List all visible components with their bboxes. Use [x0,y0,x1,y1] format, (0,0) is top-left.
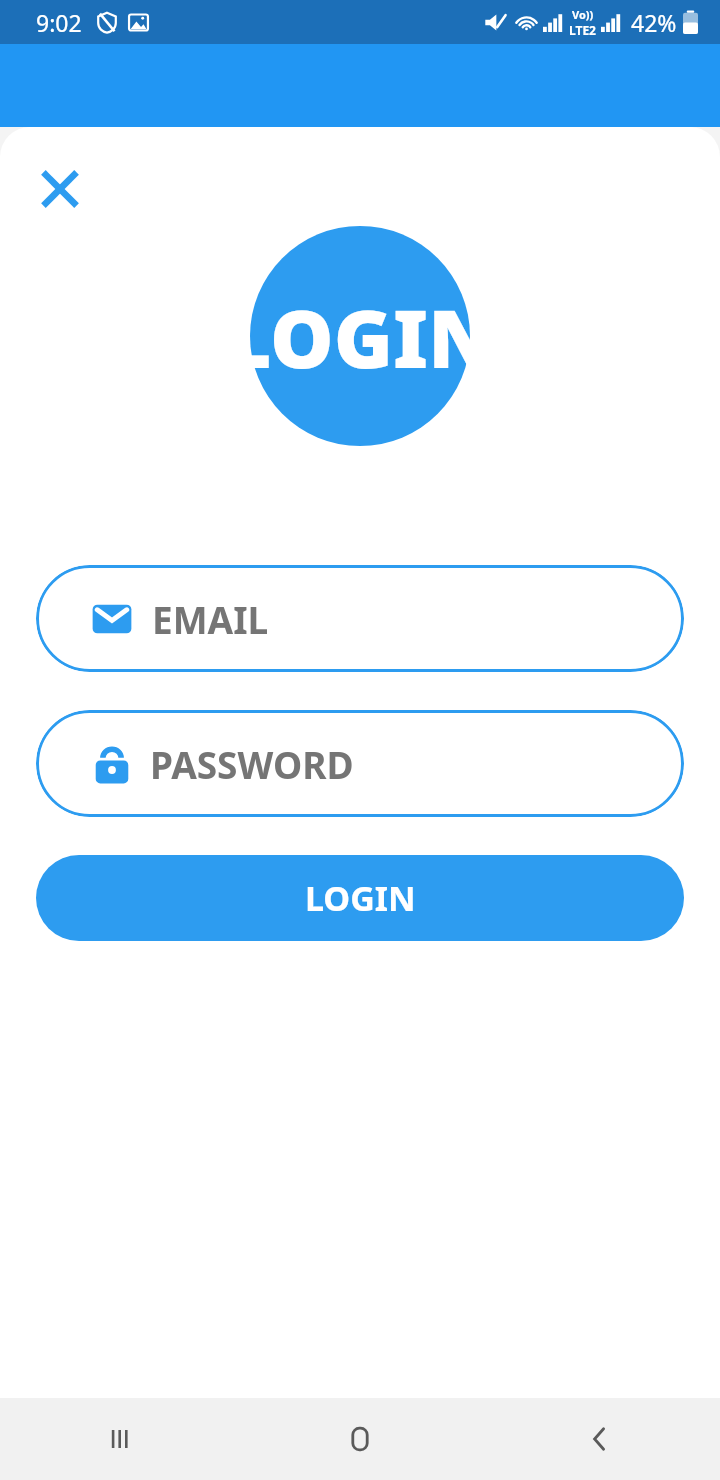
staticText: 42% [631,7,677,38]
button[interactable]: PASSWORD [36,710,684,817]
button[interactable]: EMAIL [36,565,684,672]
staticText: EMAIL [152,594,269,644]
button[interactable]: LOGIN [36,855,684,941]
staticText: Vo)) [572,7,594,22]
button[interactable]: Close [24,153,96,225]
button[interactable]: Recents [0,1398,240,1480]
staticText: PASSWORD [150,739,354,789]
button[interactable]: Back [480,1398,720,1480]
staticText: LOGIN [305,875,416,921]
staticText: LTE2 [569,22,596,38]
staticText: 9:02 [36,7,82,38]
button[interactable]: Home [240,1398,480,1480]
staticText: LOGIN [225,282,495,391]
